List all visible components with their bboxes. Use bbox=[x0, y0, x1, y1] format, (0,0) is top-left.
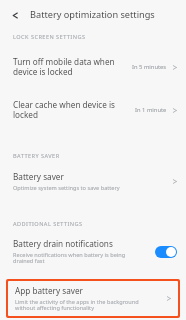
button[interactable]: Battery drain notifications toggle bbox=[155, 246, 177, 258]
staticText: Receive notifications when battery is be… bbox=[13, 251, 126, 265]
staticText: LOCK SCREEN SETTINGS bbox=[13, 33, 86, 41]
button[interactable]: Turn off mobile data when device is lock… bbox=[0, 50, 186, 84]
button[interactable]: Battery drain notifications bbox=[0, 238, 186, 265]
staticText: App battery saver bbox=[15, 285, 83, 296]
staticText: In 1 minute bbox=[135, 106, 167, 114]
staticText: BATTERY SAVER bbox=[13, 152, 60, 160]
button[interactable]: Back bbox=[7, 7, 23, 23]
staticText: Limit the activity of the apps in the ba… bbox=[15, 298, 139, 312]
button[interactable]: Battery saver bbox=[0, 169, 186, 194]
staticText: Battery saver bbox=[13, 171, 64, 182]
staticText: Optimize system settings to save battery bbox=[13, 184, 120, 192]
staticText: Battery optimization settings bbox=[30, 8, 155, 21]
staticText: Clear cache when device is locked bbox=[13, 99, 129, 121]
staticText: Battery drain notifications bbox=[13, 238, 113, 249]
button[interactable]: Clear cache when device is locked bbox=[0, 93, 186, 127]
button[interactable]: App battery saver bbox=[8, 281, 178, 316]
staticText: In 5 minutes bbox=[132, 63, 167, 71]
staticText: ADDITIONAL SETTINGS bbox=[13, 220, 83, 228]
staticText: Turn off mobile data when device is lock… bbox=[13, 56, 126, 78]
